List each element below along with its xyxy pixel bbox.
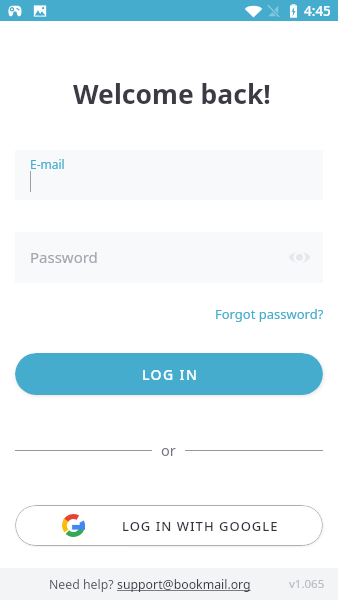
staticText: E-mail	[30, 156, 65, 172]
button[interactable]: E-mail	[15, 150, 323, 200]
button[interactable]: Forgot password?	[215, 305, 324, 323]
button[interactable]: support@bookmail.org	[117, 576, 251, 593]
staticText: Welcome back!	[73, 76, 271, 112]
staticText: support@bookmail.org	[117, 576, 251, 593]
button[interactable]: Show password	[288, 249, 311, 265]
staticText: LOG IN WITH GOOGLE	[122, 517, 279, 535]
staticText: or	[161, 440, 176, 459]
staticText: LOG IN	[142, 365, 199, 384]
staticText: v1.065	[289, 576, 325, 592]
button[interactable]: LOG IN WITH GOOGLE	[15, 505, 323, 546]
staticText: Password	[30, 247, 98, 267]
button[interactable]: Password	[15, 232, 323, 283]
staticText: 4:45	[304, 2, 331, 20]
staticText: Need help?	[49, 576, 117, 593]
staticText: Forgot password?	[215, 305, 324, 323]
button[interactable]: LOG IN	[15, 353, 323, 395]
